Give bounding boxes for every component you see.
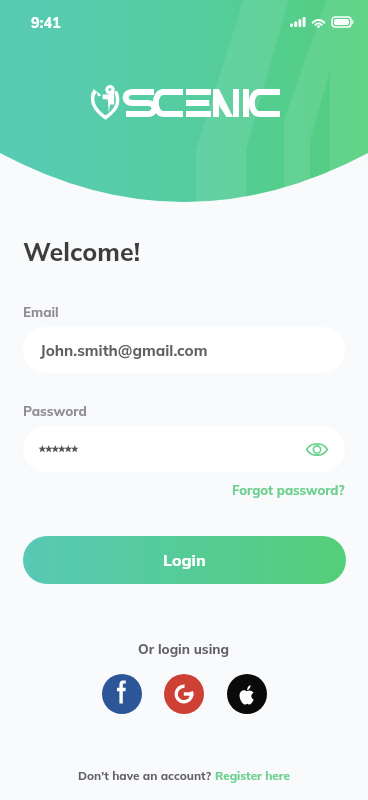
staticText: Email (23, 304, 59, 321)
button[interactable]: John.smith@gmail.com (23, 327, 345, 373)
button[interactable]: Sign in with Apple (227, 674, 267, 714)
staticText: 9:41 (31, 13, 61, 31)
button[interactable]: Sign in with Google (164, 674, 204, 714)
staticText: Or login using (138, 640, 230, 657)
staticText: Welcome! (23, 236, 141, 267)
staticText: John.smith@gmail.com (40, 341, 208, 360)
staticText: Password (23, 403, 87, 420)
staticText: Login (163, 550, 206, 570)
button[interactable]: Show password (23, 426, 345, 472)
button[interactable]: Show password (301, 433, 333, 465)
staticText: Don't have an account? (78, 768, 215, 783)
button[interactable]: Sign in with Facebook (102, 674, 142, 714)
button[interactable]: Forgot password? (232, 482, 345, 498)
button[interactable]: Register here (215, 768, 290, 783)
button[interactable]: Login (23, 536, 346, 584)
